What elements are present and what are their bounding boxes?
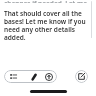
- button[interactable]: Attach: [30, 73, 38, 81]
- staticText: changes if needed. Let me: [4, 0, 87, 3]
- button[interactable]: New chat: [75, 70, 88, 83]
- button[interactable]: Tools: [4, 70, 57, 83]
- staticText: That should cover all the bases! Let me …: [4, 9, 88, 42]
- button[interactable]: Send: [45, 73, 53, 81]
- button[interactable]: Tools: [10, 73, 17, 80]
